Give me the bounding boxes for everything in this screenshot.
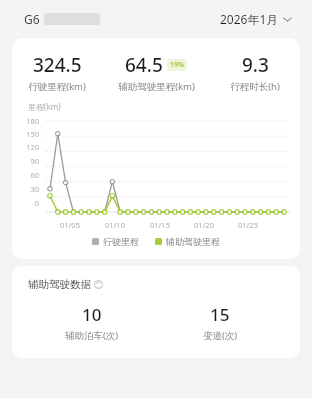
button[interactable]: 行驶里程 bbox=[92, 236, 139, 247]
staticText: 180 bbox=[20, 116, 39, 126]
button[interactable]: 64.5 bbox=[102, 52, 210, 93]
staticText: 2026年1月 bbox=[220, 11, 279, 27]
staticText: 90 bbox=[20, 156, 39, 166]
button[interactable]: 9.3 bbox=[210, 52, 300, 93]
staticText: 辅助泊车(次) bbox=[65, 329, 119, 342]
staticText: 01/10 bbox=[105, 220, 125, 230]
staticText: 行程时长(h) bbox=[230, 80, 280, 93]
staticText: 行驶里程(km) bbox=[28, 80, 86, 93]
staticText: 64.5 bbox=[125, 52, 163, 78]
staticText: 9.3 bbox=[242, 52, 269, 78]
staticText: 120 bbox=[20, 142, 39, 152]
staticText: 0 bbox=[20, 198, 39, 208]
staticText: 150 bbox=[20, 129, 39, 139]
staticText: 辅助驾驶里程 bbox=[166, 236, 220, 247]
button[interactable]: 辅助驾驶数据 bbox=[28, 278, 103, 291]
staticText: 变道(次) bbox=[203, 329, 238, 342]
staticText: G6 bbox=[24, 11, 40, 27]
staticText: 30 bbox=[20, 184, 39, 194]
staticText: 01/25 bbox=[238, 220, 258, 230]
staticText: 10 bbox=[82, 303, 102, 326]
staticText: 15 bbox=[210, 303, 230, 326]
staticText: 324.5 bbox=[33, 52, 82, 78]
staticText: 01/15 bbox=[150, 220, 170, 230]
staticText: 里程(km) bbox=[28, 101, 61, 112]
button[interactable]: 2026年1月 bbox=[218, 7, 294, 31]
button[interactable]: 324.5 bbox=[12, 52, 102, 93]
staticText: 60 bbox=[20, 170, 39, 180]
staticText: 辅助驾驶数据 bbox=[28, 278, 91, 291]
other: 说明 bbox=[94, 280, 103, 289]
staticText: 01/20 bbox=[194, 220, 214, 230]
staticText: 01/05 bbox=[60, 220, 80, 230]
button[interactable]: 10 bbox=[28, 303, 156, 342]
staticText: 行驶里程 bbox=[103, 236, 139, 247]
button[interactable]: 辅助驾驶里程 bbox=[155, 236, 220, 247]
staticText: 辅助驾驶里程(km) bbox=[118, 80, 195, 93]
staticText: 19% bbox=[170, 60, 184, 70]
button[interactable]: 15 bbox=[156, 303, 284, 342]
